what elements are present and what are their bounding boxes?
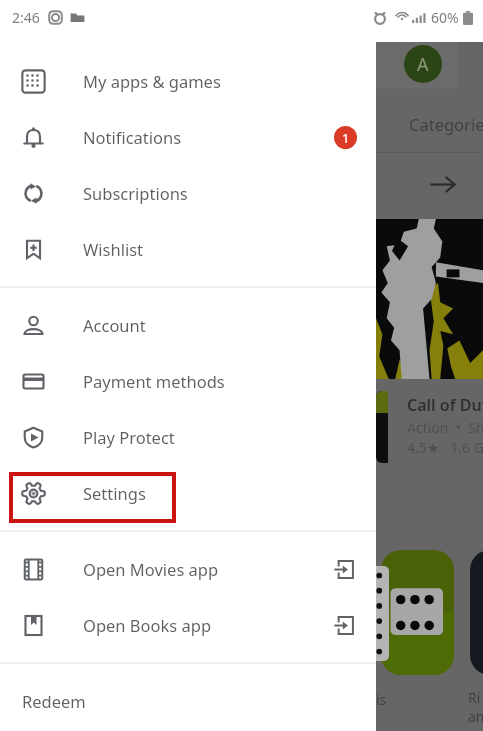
staticText: is	[376, 690, 387, 709]
staticText: 2:46	[12, 8, 40, 27]
button[interactable]: Redeem	[0, 673, 376, 729]
staticText: Account	[83, 314, 146, 336]
staticText: Subscriptions	[83, 182, 188, 204]
staticText: Ri	[468, 688, 481, 707]
button[interactable]: Account	[0, 297, 376, 353]
staticText: Wishlist	[83, 238, 144, 260]
button[interactable]: Payment methods	[0, 353, 376, 409]
staticText: Action • Sho	[407, 418, 483, 437]
staticText: 1	[342, 129, 350, 147]
button[interactable]: Settings	[0, 465, 376, 521]
staticText: Open Books app	[83, 614, 212, 636]
staticText: 60%	[431, 8, 459, 27]
staticText: My apps & games	[83, 70, 221, 92]
staticText: Open Movies app	[83, 558, 219, 580]
staticText: Call of Duty	[407, 394, 483, 416]
other: Open app	[334, 615, 355, 636]
staticText: Notifications	[83, 126, 182, 148]
other: More	[430, 172, 456, 197]
button[interactable]: Open Movies app	[0, 541, 376, 597]
staticText: an	[468, 707, 483, 726]
staticText: Play Protect	[83, 426, 175, 448]
staticText: Categories	[409, 113, 483, 135]
other: Open app	[334, 559, 355, 580]
staticText: 4.5★ 1.6 G	[407, 438, 483, 457]
button[interactable]: Wishlist	[0, 221, 376, 277]
staticText: Redeem	[22, 690, 86, 712]
staticText: Settings	[83, 482, 146, 504]
button[interactable]: Notifications	[0, 109, 376, 165]
staticText: Payment methods	[83, 370, 225, 392]
button[interactable]: Subscriptions	[0, 165, 376, 221]
staticText: A	[417, 52, 429, 77]
button[interactable]: My apps & games	[0, 53, 376, 109]
button[interactable]: A	[404, 45, 442, 83]
button[interactable]: Play Protect	[0, 409, 376, 465]
button[interactable]: Open Books app	[0, 597, 376, 653]
